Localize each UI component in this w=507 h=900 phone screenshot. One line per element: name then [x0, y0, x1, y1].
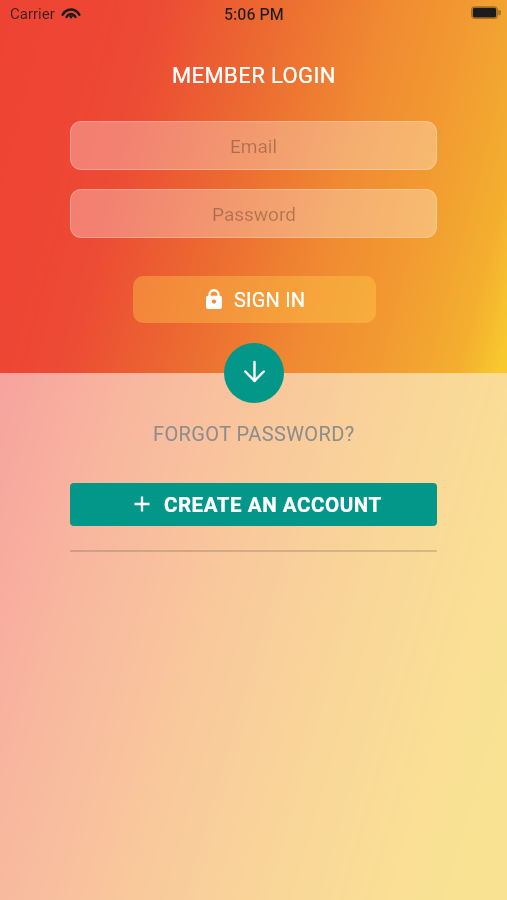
button[interactable]: FORGOT PASSWORD? — [137, 417, 371, 450]
button[interactable]: Scroll down — [224, 343, 284, 403]
staticText: Email — [230, 135, 278, 157]
button[interactable]: CREATE AN ACCOUNT — [70, 483, 437, 526]
staticText: Carrier — [10, 5, 55, 23]
button[interactable]: Password — [70, 189, 437, 238]
staticText: FORGOT PASSWORD? — [153, 422, 355, 445]
staticText: CREATE AN ACCOUNT — [164, 493, 382, 517]
staticText: Password — [212, 203, 296, 225]
staticText: MEMBER LOGIN — [172, 63, 336, 89]
staticText: SIGN IN — [234, 288, 306, 311]
button[interactable]: Email — [70, 121, 437, 170]
button[interactable]: SIGN IN — [133, 276, 376, 323]
staticText: 5:06 PM — [224, 5, 284, 24]
